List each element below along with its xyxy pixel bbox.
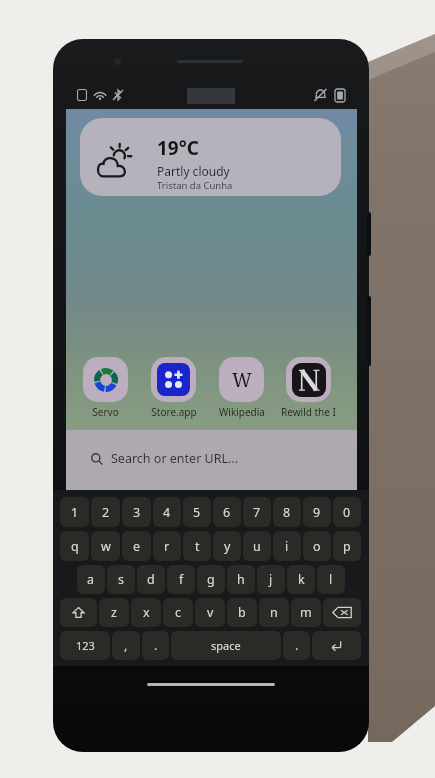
- button[interactable]: space: [171, 631, 281, 660]
- staticText: ,: [124, 637, 128, 654]
- staticText: 6: [223, 504, 231, 521]
- button[interactable]: 7: [243, 497, 271, 527]
- button[interactable]: f: [167, 565, 195, 594]
- staticText: x: [143, 604, 150, 621]
- staticText: W: [232, 367, 252, 393]
- staticText: g: [207, 571, 215, 588]
- button[interactable]: o: [303, 531, 331, 561]
- staticText: 7: [253, 504, 261, 521]
- staticText: p: [343, 538, 351, 555]
- button[interactable]: .: [142, 631, 169, 660]
- button[interactable]: ,: [112, 631, 140, 660]
- button[interactable]: Rewild the I: [279, 357, 338, 419]
- button[interactable]: 6: [213, 497, 241, 527]
- button[interactable]: 9: [303, 497, 331, 527]
- button[interactable]: h: [227, 565, 255, 594]
- button[interactable]: w: [91, 531, 120, 561]
- staticText: Store.app: [151, 405, 197, 419]
- staticText: .: [295, 637, 299, 654]
- staticText: n: [270, 604, 278, 621]
- staticText: 8: [283, 504, 291, 521]
- staticText: d: [147, 571, 155, 588]
- staticText: o: [313, 538, 321, 555]
- button[interactable]: .: [283, 631, 310, 660]
- button[interactable]: e: [122, 531, 151, 561]
- button[interactable]: v: [195, 598, 225, 627]
- button[interactable]: k: [287, 565, 315, 594]
- staticText: .: [154, 637, 158, 654]
- button[interactable]: p: [333, 531, 361, 561]
- button[interactable]: [312, 631, 361, 660]
- button[interactable]: [60, 598, 97, 627]
- staticText: v: [207, 604, 214, 621]
- button[interactable]: r: [153, 531, 181, 561]
- button[interactable]: g: [197, 565, 225, 594]
- staticText: 3: [133, 504, 141, 521]
- button[interactable]: 3: [122, 497, 151, 527]
- button[interactable]: x: [131, 598, 161, 627]
- staticText: Partly cloudy: [157, 163, 230, 179]
- button[interactable]: 0: [333, 497, 361, 527]
- staticText: b: [238, 604, 246, 621]
- staticText: m: [300, 604, 312, 621]
- button[interactable]: 2: [91, 497, 120, 527]
- button[interactable]: d: [137, 565, 165, 594]
- staticText: c: [175, 604, 182, 621]
- staticText: a: [87, 571, 95, 588]
- staticText: f: [179, 571, 184, 588]
- button[interactable]: Servo: [76, 357, 135, 419]
- staticText: Servo: [92, 405, 119, 419]
- button[interactable]: Search or enter URL...: [66, 430, 357, 490]
- button[interactable]: 1: [60, 497, 89, 527]
- staticText: k: [298, 571, 305, 588]
- staticText: space: [211, 638, 241, 653]
- staticText: 9: [313, 504, 321, 521]
- staticText: l: [329, 571, 333, 588]
- button[interactable]: n: [259, 598, 289, 627]
- staticText: r: [164, 538, 170, 555]
- staticText: 123: [76, 638, 95, 653]
- staticText: Wikipedia: [219, 405, 265, 419]
- staticText: 1: [71, 504, 79, 521]
- button[interactable]: z: [99, 598, 129, 627]
- staticText: e: [133, 538, 141, 555]
- button[interactable]: l: [317, 565, 345, 594]
- staticText: h: [237, 571, 245, 588]
- button[interactable]: 5: [183, 497, 211, 527]
- staticText: 4: [163, 504, 171, 521]
- staticText: z: [111, 604, 117, 621]
- staticText: y: [224, 538, 231, 555]
- button[interactable]: u: [243, 531, 271, 561]
- button[interactable]: s: [107, 565, 135, 594]
- button[interactable]: [323, 598, 361, 627]
- button[interactable]: j: [257, 565, 285, 594]
- button[interactable]: t: [183, 531, 211, 561]
- button[interactable]: 19°C: [80, 118, 341, 196]
- staticText: s: [118, 571, 124, 588]
- button[interactable]: b: [227, 598, 257, 627]
- button[interactable]: q: [60, 531, 89, 561]
- staticText: j: [269, 571, 273, 588]
- staticText: 0: [343, 504, 351, 521]
- staticText: t: [195, 538, 200, 555]
- button[interactable]: Store.app: [144, 357, 203, 419]
- staticText: Rewild the I: [281, 405, 336, 419]
- staticText: u: [253, 538, 261, 555]
- button[interactable]: a: [77, 565, 105, 594]
- button[interactable]: i: [273, 531, 301, 561]
- staticText: i: [285, 538, 289, 555]
- staticText: Search or enter URL...: [111, 450, 239, 467]
- staticText: 2: [102, 504, 110, 521]
- button[interactable]: 123: [60, 631, 110, 660]
- button[interactable]: m: [291, 598, 321, 627]
- staticText: q: [71, 538, 79, 555]
- button[interactable]: W: [212, 357, 271, 419]
- staticText: w: [101, 538, 111, 555]
- button[interactable]: 4: [153, 497, 181, 527]
- staticText: Tristan da Cunha: [157, 179, 233, 192]
- button[interactable]: c: [163, 598, 193, 627]
- button[interactable]: y: [213, 531, 241, 561]
- button[interactable]: 8: [273, 497, 301, 527]
- staticText: 19°C: [157, 135, 199, 161]
- staticText: 5: [193, 504, 201, 521]
